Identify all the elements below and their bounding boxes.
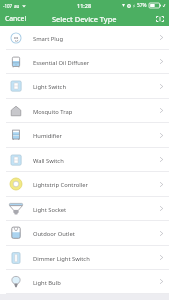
staticText: Smart Plug bbox=[33, 35, 63, 43]
staticText: 57% bbox=[137, 2, 147, 9]
button[interactable]: Light Switch bbox=[0, 74, 169, 99]
button[interactable]: Essential Oil Diffuser bbox=[0, 50, 169, 74]
staticText: Outdoor Outlet bbox=[33, 230, 75, 238]
staticText: Cancel bbox=[5, 14, 27, 23]
staticText: Light Bulb bbox=[33, 279, 61, 287]
staticText: 11:28 bbox=[77, 2, 92, 9]
staticText: Humidifier bbox=[33, 132, 63, 140]
staticText: au bbox=[14, 3, 20, 9]
staticText: Light Socket bbox=[33, 206, 67, 214]
staticText: Wall Switch bbox=[33, 157, 64, 165]
staticText: Select Device Type bbox=[52, 14, 117, 24]
button[interactable]: Mosquito Trap bbox=[0, 99, 169, 123]
button[interactable]: Dimmer Light Switch bbox=[0, 246, 169, 270]
button[interactable]: Cancel bbox=[0, 11, 32, 26]
button[interactable]: Light Socket bbox=[0, 197, 169, 221]
staticText: Dimmer Light Switch bbox=[33, 255, 90, 263]
staticText: Essential Oil Diffuser bbox=[33, 59, 90, 67]
button[interactable]: Lightstrip Controller bbox=[0, 172, 169, 197]
button[interactable]: Light Bulb bbox=[0, 270, 169, 294]
staticText: Lightstrip Controller bbox=[33, 181, 88, 189]
button[interactable]: Humidifier bbox=[0, 123, 169, 148]
button[interactable]: Smart Plug bbox=[0, 26, 169, 50]
staticText: Light Switch bbox=[33, 83, 66, 91]
staticText: Mosquito Trap bbox=[33, 108, 73, 116]
button[interactable]: Wall Switch bbox=[0, 148, 169, 172]
staticText: -107 bbox=[3, 3, 13, 9]
button[interactable]: Scan QR code bbox=[151, 11, 169, 26]
button[interactable]: Outdoor Outlet bbox=[0, 221, 169, 246]
